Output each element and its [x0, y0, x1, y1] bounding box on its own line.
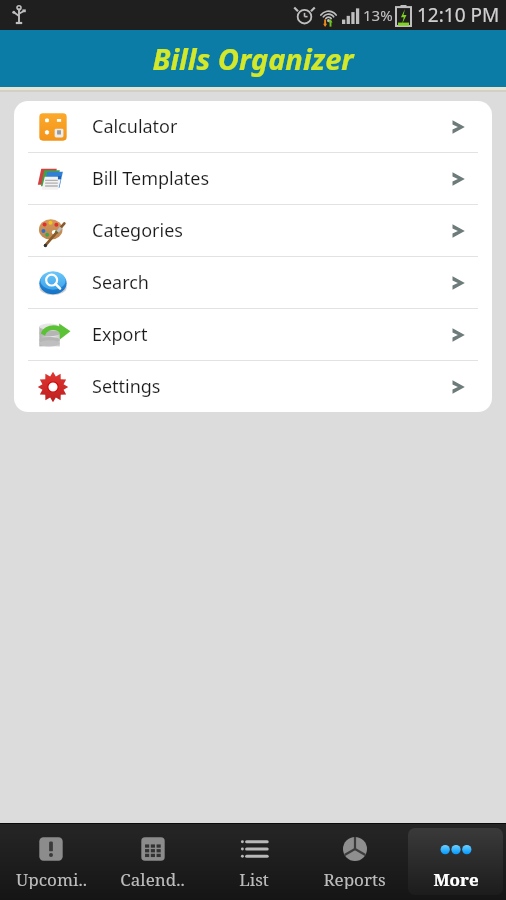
button[interactable]: List: [206, 828, 301, 895]
button[interactable]: Bill Templates: [14, 153, 492, 204]
staticText: 12:10 PM: [417, 2, 500, 28]
staticText: Bills Organizer: [152, 39, 354, 78]
staticText: Search: [92, 270, 149, 295]
staticText: List: [239, 868, 269, 889]
button[interactable]: Categories: [14, 205, 492, 256]
button[interactable]: Calendar: [105, 828, 200, 895]
button[interactable]: Reports: [307, 828, 402, 895]
staticText: More: [433, 868, 479, 889]
other: Reports: [340, 834, 370, 864]
button[interactable]: Export: [14, 309, 492, 360]
staticText: Calend..: [120, 868, 185, 889]
staticText: Categories: [92, 218, 183, 243]
other: More: [441, 834, 471, 864]
button[interactable]: More: [408, 828, 503, 895]
button[interactable]: Upcoming: [3, 828, 99, 895]
staticText: Settings: [92, 374, 161, 399]
staticText: Upcomi..: [16, 868, 87, 889]
other: List: [239, 834, 269, 864]
button[interactable]: Search: [14, 257, 492, 308]
staticText: Export: [92, 322, 148, 347]
other: Calendar: [138, 834, 168, 864]
other: Alarm: [295, 6, 314, 25]
staticText: Bill Templates: [92, 166, 210, 191]
button[interactable]: Settings: [14, 361, 492, 412]
staticText: Reports: [323, 868, 386, 889]
staticText: Calculator: [92, 114, 178, 139]
button[interactable]: Calculator: [14, 101, 492, 152]
other: Upcoming: [36, 834, 66, 864]
staticText: 13%: [363, 5, 393, 25]
